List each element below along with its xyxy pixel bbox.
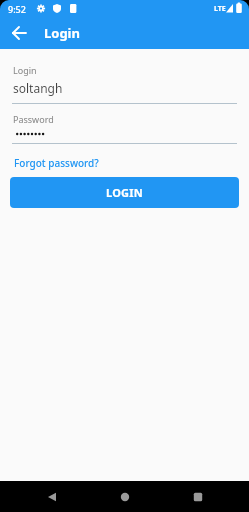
staticText: soltangh — [13, 80, 63, 96]
button[interactable]: Login — [12, 64, 237, 104]
button[interactable] — [32, 481, 72, 512]
staticText: LTE — [214, 4, 226, 14]
staticText: 9:52 — [8, 3, 26, 15]
button[interactable] — [178, 481, 218, 512]
staticText: Login — [13, 64, 37, 76]
button[interactable] — [105, 481, 145, 512]
staticText: LOGIN — [106, 185, 143, 200]
staticText: Login — [44, 24, 80, 42]
button[interactable]: Password — [12, 113, 237, 144]
staticText: Forgot password? — [14, 156, 99, 170]
button[interactable]: LOGIN — [10, 177, 239, 208]
button[interactable] — [10, 23, 30, 43]
staticText: Password — [13, 113, 54, 125]
button[interactable]: Forgot password? — [12, 156, 99, 170]
